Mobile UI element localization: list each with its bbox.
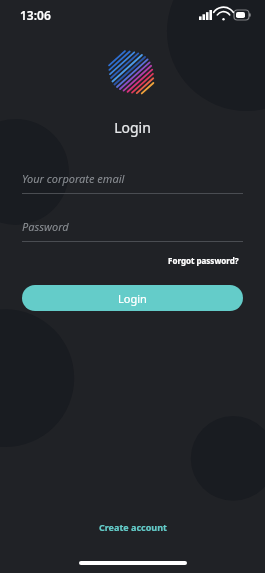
- button[interactable]: Create account: [89, 515, 177, 539]
- staticText: Create account: [99, 521, 167, 533]
- staticText: 13:06: [20, 7, 51, 23]
- button[interactable]: Password: [22, 219, 243, 242]
- button[interactable]: Login: [22, 285, 243, 311]
- staticText: Forgot password?: [168, 255, 239, 266]
- staticText: Password: [22, 219, 69, 234]
- staticText: Login: [0, 118, 265, 137]
- staticText: Your corporate email: [22, 171, 125, 186]
- button[interactable]: Forgot password?: [164, 251, 243, 270]
- staticText: Login: [118, 291, 147, 306]
- button[interactable]: Your corporate email: [22, 171, 243, 194]
